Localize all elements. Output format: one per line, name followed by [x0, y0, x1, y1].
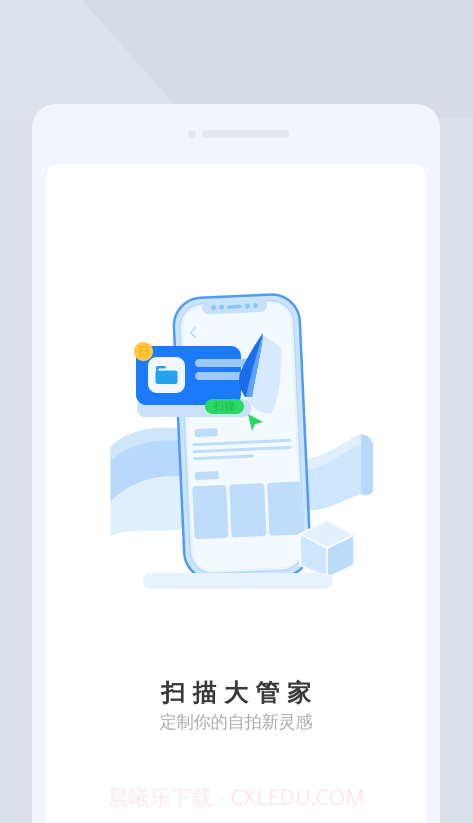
staticText: 日 [137, 344, 149, 359]
staticText: 扫描 [213, 400, 235, 413]
staticText: 晨曦乐下载 · CXLEDU.COM [107, 783, 364, 811]
staticText: 扫描大管家 [161, 678, 311, 708]
staticText: 定制你的自拍新灵感 [159, 711, 312, 733]
